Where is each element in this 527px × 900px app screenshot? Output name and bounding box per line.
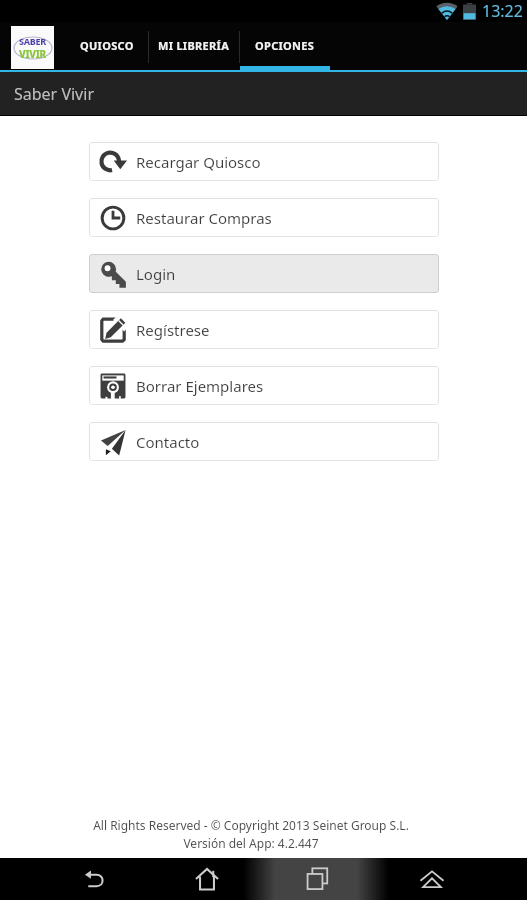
staticText: 13:22 [482, 0, 523, 22]
staticText: Borrar Ejemplares [136, 376, 264, 396]
staticText: OPCIONES [255, 38, 315, 53]
button[interactable]: QUIOSCO [65, 22, 148, 72]
button[interactable]: Back [67, 858, 122, 900]
staticText: Versión del App: 4.2.447 [183, 835, 319, 851]
staticText: SABER [19, 35, 46, 47]
button[interactable]: Recargar Quiosco [89, 142, 439, 181]
button[interactable]: Contacto [89, 422, 439, 461]
button[interactable]: Menu [404, 858, 459, 900]
staticText: Restaurar Compras [136, 208, 272, 228]
button[interactable]: OPCIONES [240, 22, 330, 72]
staticText: All Rights Reserved - © Copyright 2013 S… [93, 817, 409, 833]
button[interactable]: Regístrese [89, 310, 439, 349]
button[interactable]: MI LIBRERÍA [149, 22, 239, 72]
staticText: Login [136, 264, 176, 284]
staticText: MI LIBRERÍA [158, 38, 230, 53]
staticText: QUIOSCO [80, 38, 134, 53]
staticText: Contacto [136, 432, 200, 452]
button[interactable]: Login [89, 254, 439, 293]
button[interactable]: Recent apps [290, 858, 345, 900]
staticText: Recargar Quiosco [136, 152, 261, 172]
staticText: Saber Vivir [14, 83, 94, 105]
button[interactable]: Restaurar Compras [89, 198, 439, 237]
button[interactable]: Borrar Ejemplares [89, 366, 439, 405]
staticText: Regístrese [136, 320, 210, 340]
staticText: VIVIR [19, 47, 46, 61]
button[interactable]: Home [179, 858, 234, 900]
